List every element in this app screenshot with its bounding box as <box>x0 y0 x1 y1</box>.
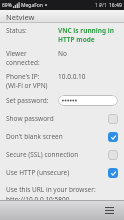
other: Unchecked <box>108 114 118 124</box>
staticText: http://10.0.0.10:5800 <box>6 195 70 200</box>
staticText: Use this URL in your browser: <box>6 185 96 194</box>
other: Unchecked <box>108 150 118 160</box>
staticText: No <box>58 49 67 58</box>
staticText: Viewer connected: <box>6 49 58 67</box>
staticText: 16:49 <box>109 2 122 9</box>
staticText: 10.0.0.10 <box>58 72 86 81</box>
button[interactable]: Don't blank screen <box>0 130 124 143</box>
staticText: Show password <box>6 114 108 123</box>
staticText: Use HTTP (unsecure) <box>6 168 108 177</box>
staticText: Don't blank screen <box>6 132 108 141</box>
staticText: VNC is running in HTTP mode <box>58 26 114 44</box>
button[interactable]: Show password <box>0 112 124 125</box>
other: Checked <box>108 132 118 142</box>
staticText: Netview <box>6 12 35 22</box>
staticText: Set password: <box>6 96 58 105</box>
button[interactable] <box>58 95 118 106</box>
button[interactable]: Menu <box>102 203 116 217</box>
staticText: Phone's IP: (Wi-Fi or VPN) <box>6 72 48 90</box>
button[interactable]: Secure (SSL) connection <box>0 148 124 161</box>
staticText: 1 ₽/1 <box>95 2 107 9</box>
staticText: Status: <box>6 26 27 35</box>
staticText: 69% <box>2 2 12 9</box>
other: Checked <box>108 168 118 178</box>
staticText: Secure (SSL) connection <box>6 150 108 159</box>
button[interactable]: Use HTTP (unsecure) <box>0 166 124 179</box>
staticText: MegaFon <box>21 2 43 9</box>
